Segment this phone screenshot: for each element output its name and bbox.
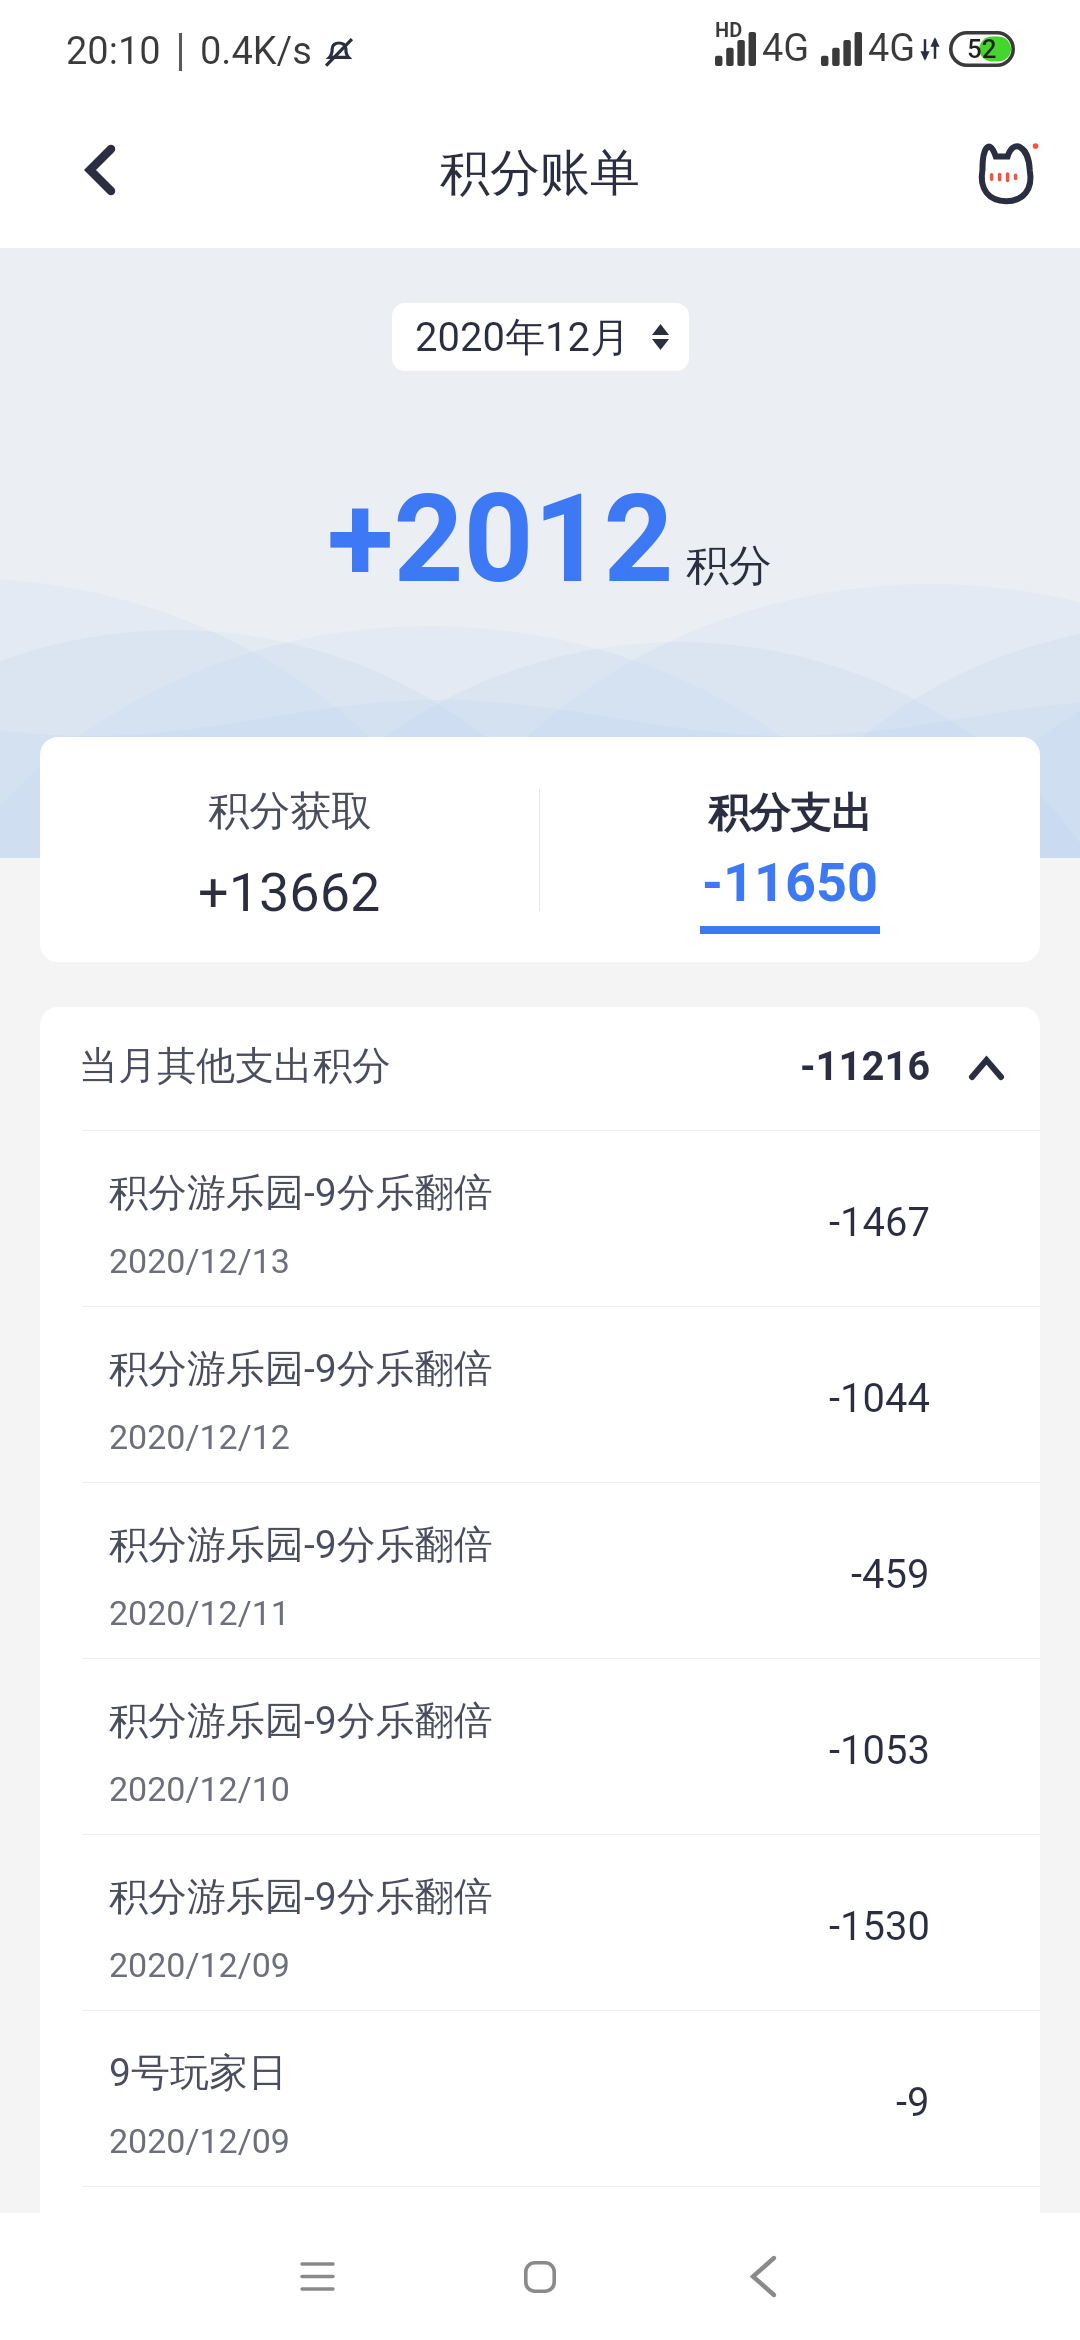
staticText: HD (715, 18, 743, 41)
staticText: 20:10 (66, 29, 161, 74)
staticText: 积分游乐园-9分乐翻倍 (109, 1872, 493, 1921)
button[interactable]: 积分游乐园-9分乐翻倍 (40, 1131, 1040, 1306)
staticText: 52 (967, 34, 997, 64)
button[interactable]: 积分游乐园-9分乐翻倍 (40, 1483, 1040, 1658)
button[interactable]: Back (54, 124, 146, 216)
staticText: +13662 (198, 861, 381, 924)
staticText: 4G (762, 26, 810, 71)
staticText: 2020年12月 (415, 312, 630, 362)
staticText: 2020/12/09 (109, 2121, 290, 2161)
staticText: -1044 (829, 1375, 930, 1422)
staticText: -1053 (829, 1727, 930, 1774)
staticText: +2012 (327, 468, 674, 611)
staticText: 积分游乐园-9分乐翻倍 (109, 1344, 493, 1393)
button[interactable]: 9号玩家日 (40, 2011, 1040, 2186)
staticText: 积分游乐园-9分乐翻倍 (109, 1696, 493, 1745)
button[interactable]: 积分游乐园-9分乐翻倍 (40, 1835, 1040, 2010)
staticText: -11216 (800, 1043, 931, 1090)
button[interactable]: Recent apps (247, 2213, 387, 2340)
staticText: 积分账单 (440, 142, 640, 205)
staticText: 2020/12/10 (109, 1769, 290, 1809)
staticText: 4G (868, 26, 916, 71)
staticText: 积分 (686, 539, 772, 593)
staticText: 当月其他支出积分 (79, 1041, 391, 1090)
staticText: -1530 (829, 1903, 930, 1950)
staticText: -11650 (702, 851, 878, 914)
staticText: -459 (851, 1551, 930, 1598)
staticText: 2020/12/09 (109, 1945, 290, 1985)
button[interactable]: 积分游乐园-9分乐翻倍 (40, 2187, 1040, 2340)
button[interactable]: 当月其他支出积分 (40, 1007, 1040, 1130)
button[interactable]: Customer service (963, 124, 1055, 216)
staticText: 2020/12/12 (109, 1417, 290, 1457)
staticText: 积分游乐园-9分乐翻倍 (109, 1520, 493, 1569)
staticText: 2020/12/11 (109, 1593, 290, 1633)
staticText: 积分游乐园-9分乐翻倍 (109, 1168, 493, 1217)
button[interactable]: 2020年12月 (392, 303, 689, 371)
button[interactable]: Home (470, 2213, 610, 2340)
staticText: 0.4K/s (200, 29, 312, 74)
staticText: -1467 (829, 1199, 930, 1246)
staticText: 2020/12/13 (109, 1241, 290, 1281)
staticText: 积分支出 (708, 788, 872, 840)
staticText: 积分获取 (208, 786, 372, 838)
staticText: 9号玩家日 (109, 2048, 287, 2097)
button[interactable]: 积分游乐园-9分乐翻倍 (40, 1307, 1040, 1482)
staticText: -9 (896, 2079, 930, 2126)
button[interactable]: Back (693, 2213, 833, 2340)
button[interactable]: 积分游乐园-9分乐翻倍 (40, 1659, 1040, 1834)
button[interactable]: 积分支出 (540, 737, 1040, 962)
